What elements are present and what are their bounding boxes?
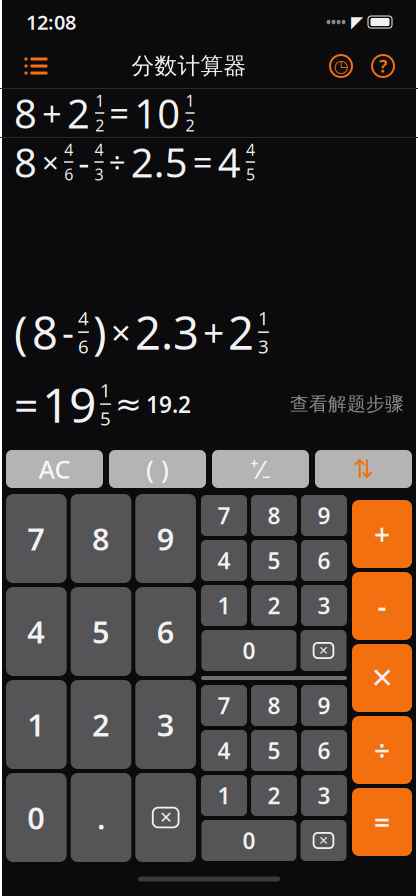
- staticText: ÷: [374, 731, 390, 769]
- button[interactable]: 1: [201, 775, 247, 816]
- button[interactable]: 5: [251, 540, 297, 581]
- button[interactable]: History: [324, 47, 358, 85]
- staticText: 19.2: [146, 389, 191, 419]
- button[interactable]: Delete: [300, 630, 346, 671]
- staticText: 8: [14, 135, 37, 188]
- staticText: 2.5: [131, 135, 188, 188]
- staticText: ⇅: [353, 455, 374, 483]
- button[interactable]: 6: [301, 730, 347, 771]
- staticText: ×: [111, 309, 131, 355]
- button[interactable]: 1: [6, 680, 67, 769]
- button[interactable]: 0: [201, 630, 296, 671]
- button[interactable]: 8: [71, 494, 131, 583]
- staticText: 19: [42, 372, 96, 436]
- staticText: 2: [92, 704, 110, 745]
- button[interactable]: 7: [6, 494, 67, 583]
- staticText: ( ): [146, 452, 169, 486]
- staticText: 1: [27, 704, 45, 745]
- button[interactable]: 4: [201, 730, 247, 771]
- button[interactable]: Subtract: [352, 572, 412, 640]
- staticText: =: [374, 803, 390, 841]
- staticText: 3: [94, 164, 103, 185]
- button[interactable]: 8: [0, 89, 418, 137]
- staticText: 5: [246, 164, 255, 185]
- button[interactable]: Multiply: [352, 644, 412, 712]
- button[interactable]: 8: [0, 138, 418, 186]
- staticText: ◷: [333, 56, 348, 76]
- staticText: ⁺⁄₋: [250, 452, 271, 486]
- button[interactable]: Swap: [315, 450, 412, 488]
- button[interactable]: Delete: [135, 773, 196, 862]
- staticText: ?: [379, 54, 387, 77]
- button[interactable]: 查看解题步骤: [290, 387, 404, 422]
- button[interactable]: 8: [251, 495, 297, 536]
- button[interactable]: All clear: [6, 450, 103, 488]
- staticText: 4: [246, 139, 255, 160]
- button[interactable]: 4: [201, 540, 247, 581]
- staticText: ✕: [318, 834, 328, 847]
- button[interactable]: Plus minus: [212, 450, 309, 488]
- staticText: 1: [95, 90, 104, 111]
- staticText: =: [193, 139, 213, 185]
- staticText: .: [97, 797, 105, 838]
- staticText: ✕: [318, 644, 328, 657]
- button[interactable]: 5: [71, 587, 131, 676]
- staticText: ◤: [351, 13, 363, 31]
- button[interactable]: 3: [301, 775, 347, 816]
- button[interactable]: Add: [352, 500, 412, 568]
- staticText: ••••: [326, 13, 346, 31]
- staticText: =: [14, 376, 38, 432]
- button[interactable]: Divide: [352, 716, 412, 784]
- button[interactable]: 5: [251, 730, 297, 771]
- staticText: 1: [100, 378, 111, 402]
- button[interactable]: 0: [201, 820, 296, 861]
- staticText: 6: [64, 164, 73, 185]
- button[interactable]: 2: [251, 585, 297, 626]
- button[interactable]: 7: [201, 495, 247, 536]
- staticText: 5: [92, 611, 110, 652]
- button[interactable]: 1: [201, 585, 247, 626]
- button[interactable]: 2: [71, 680, 131, 769]
- button[interactable]: Help: [366, 47, 400, 85]
- staticText: ): [93, 302, 107, 362]
- staticText: ✕: [370, 662, 393, 694]
- staticText: 6: [157, 611, 175, 652]
- button[interactable]: 8: [251, 685, 297, 726]
- button[interactable]: .: [71, 773, 131, 862]
- staticText: ×: [42, 142, 59, 181]
- staticText: 0: [242, 635, 255, 665]
- staticText: 2: [185, 115, 194, 136]
- button[interactable]: 3: [301, 585, 347, 626]
- button[interactable]: 0: [6, 773, 67, 862]
- staticText: (: [14, 302, 28, 362]
- staticText: 0: [27, 797, 45, 838]
- button[interactable]: 6: [301, 540, 347, 581]
- button[interactable]: 9: [135, 494, 196, 583]
- button[interactable]: Menu: [18, 48, 54, 84]
- staticText: 6: [78, 334, 89, 359]
- staticText: 8: [32, 302, 58, 362]
- staticText: 4: [78, 306, 89, 330]
- button[interactable]: 2: [251, 775, 297, 816]
- staticText: 1: [217, 780, 230, 810]
- button[interactable]: 9: [301, 495, 347, 536]
- staticText: 2.3: [135, 302, 199, 362]
- button[interactable]: 4: [6, 587, 67, 676]
- staticText: 2: [228, 302, 254, 362]
- button[interactable]: 7: [201, 685, 247, 726]
- staticText: 7: [217, 690, 230, 720]
- button[interactable]: 3: [135, 680, 196, 769]
- button[interactable]: Equals: [352, 788, 412, 856]
- staticText: 10: [134, 86, 180, 139]
- button[interactable]: Parentheses: [109, 450, 206, 488]
- button[interactable]: 9: [301, 685, 347, 726]
- staticText: 4: [27, 611, 45, 652]
- staticText: 3: [157, 704, 175, 745]
- staticText: +: [42, 90, 62, 136]
- staticText: 7: [27, 518, 45, 559]
- staticText: 1: [185, 90, 194, 111]
- staticText: 8: [267, 690, 280, 720]
- button[interactable]: 6: [135, 587, 196, 676]
- button[interactable]: Delete: [300, 820, 346, 861]
- staticText: 9: [317, 500, 330, 530]
